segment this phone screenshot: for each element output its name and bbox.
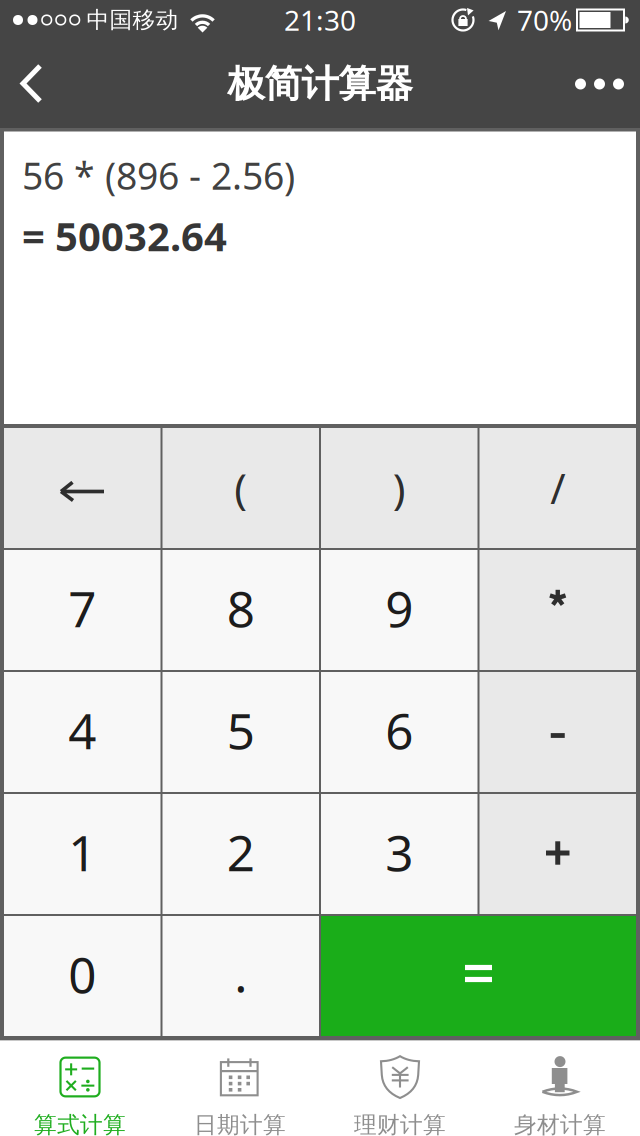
button[interactable]: 3 bbox=[321, 794, 477, 914]
button[interactable]: 身材计算 bbox=[480, 1041, 640, 1136]
staticText: 理财计算 bbox=[354, 1111, 446, 1136]
staticText: ( bbox=[234, 460, 247, 516]
button[interactable]: 0 bbox=[4, 916, 160, 1036]
button[interactable] bbox=[321, 916, 636, 1036]
staticText: 21:30 bbox=[284, 1, 356, 39]
staticText: 身材计算 bbox=[514, 1111, 606, 1136]
button[interactable]: 9 bbox=[321, 550, 477, 670]
staticText: 70% bbox=[517, 1, 572, 39]
button[interactable]: 8 bbox=[162, 550, 319, 670]
staticText: 4 bbox=[68, 697, 96, 763]
button[interactable] bbox=[4, 428, 160, 548]
staticText: 6 bbox=[385, 697, 413, 763]
button[interactable]: 7 bbox=[4, 550, 160, 670]
button[interactable]: ) bbox=[321, 428, 477, 548]
staticText: 日期计算 bbox=[194, 1111, 286, 1136]
button[interactable]: 1 bbox=[4, 794, 160, 914]
button[interactable]: 算式计算 bbox=[0, 1041, 160, 1136]
staticText: 0 bbox=[68, 941, 96, 1007]
staticText: 1 bbox=[68, 819, 96, 885]
staticText: 8 bbox=[227, 575, 255, 641]
button[interactable] bbox=[0, 40, 64, 128]
button[interactable] bbox=[479, 550, 636, 670]
staticText: 中国移动 bbox=[86, 6, 178, 34]
button[interactable] bbox=[559, 40, 640, 128]
staticText: = 50032.64 bbox=[22, 209, 227, 262]
staticText: ) bbox=[393, 460, 406, 516]
button[interactable]: 4 bbox=[4, 672, 160, 792]
button[interactable]: 6 bbox=[321, 672, 477, 792]
staticText: / bbox=[550, 461, 565, 515]
button[interactable] bbox=[479, 794, 636, 914]
staticText: 5 bbox=[227, 697, 255, 763]
button[interactable]: 2 bbox=[162, 794, 319, 914]
staticText: 极简计算器 bbox=[227, 61, 412, 107]
staticText: 9 bbox=[385, 575, 413, 641]
staticText: 3 bbox=[385, 819, 413, 885]
staticText: 7 bbox=[68, 575, 96, 641]
staticText: . bbox=[234, 940, 247, 1006]
staticText: 算式计算 bbox=[34, 1111, 126, 1136]
button[interactable]: / bbox=[479, 428, 636, 548]
button[interactable]: 日期计算 bbox=[160, 1041, 320, 1136]
staticText: 2 bbox=[227, 819, 255, 885]
button[interactable]: . bbox=[162, 916, 319, 1036]
button[interactable]: ( bbox=[162, 428, 319, 548]
button[interactable] bbox=[479, 672, 636, 792]
button[interactable]: 理财计算 bbox=[320, 1041, 480, 1136]
button[interactable]: 5 bbox=[162, 672, 319, 792]
staticText: 56 * (896 - 2.56) bbox=[22, 150, 295, 200]
